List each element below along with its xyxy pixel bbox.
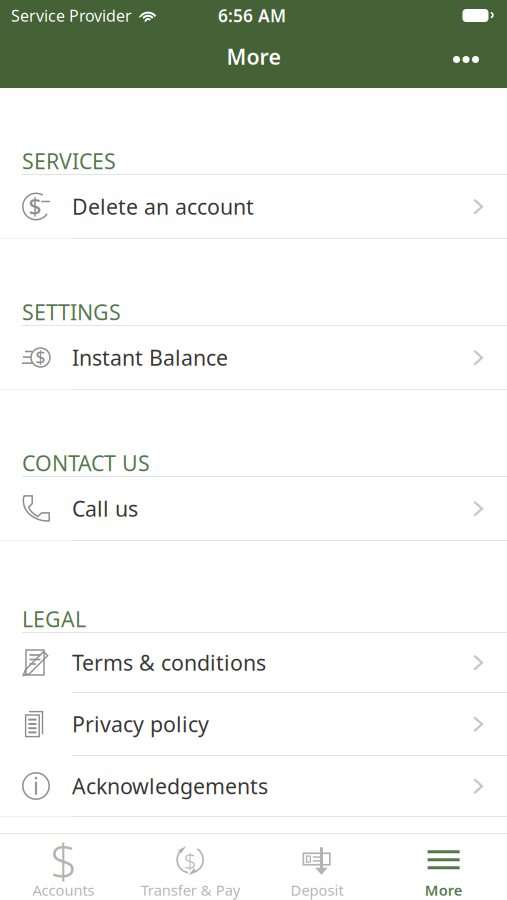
button[interactable]: $: [0, 326, 507, 389]
staticText: $: [50, 828, 77, 892]
staticText: More: [226, 42, 280, 71]
staticText: Transfer & Pay: [141, 880, 240, 900]
staticText: i: [33, 771, 39, 801]
staticText: $: [35, 346, 45, 369]
button[interactable]: Call us: [0, 477, 507, 540]
button[interactable]: More: [380, 834, 507, 900]
staticText: Deposit: [290, 880, 343, 900]
staticText: Service Provider: [11, 5, 132, 26]
staticText: More: [425, 880, 463, 900]
button[interactable]: i: [0, 756, 507, 816]
staticText: Call us: [72, 494, 138, 523]
button[interactable]: Privacy policy: [0, 693, 507, 755]
button[interactable]: $: [0, 175, 507, 238]
button[interactable]: More options: [453, 36, 507, 83]
staticText: $: [28, 191, 41, 221]
staticText: 6:56 AM: [218, 4, 286, 27]
staticText: Delete an account: [72, 192, 254, 221]
staticText: Terms & conditions: [72, 648, 266, 677]
button[interactable]: Deposit: [253, 834, 380, 900]
staticText: Accounts: [32, 880, 94, 900]
staticText: Acknowledgements: [72, 772, 268, 800]
staticText: CONTACT US: [22, 449, 150, 477]
staticText: SETTINGS: [22, 298, 121, 326]
staticText: $: [184, 845, 197, 875]
button[interactable]: Terms & conditions: [0, 633, 507, 692]
staticText: Instant Balance: [72, 343, 228, 372]
staticText: LEGAL: [22, 605, 86, 633]
button[interactable]: $: [0, 834, 127, 900]
staticText: Privacy policy: [72, 710, 209, 738]
button[interactable]: $: [127, 834, 254, 900]
staticText: SERVICES: [22, 147, 116, 175]
